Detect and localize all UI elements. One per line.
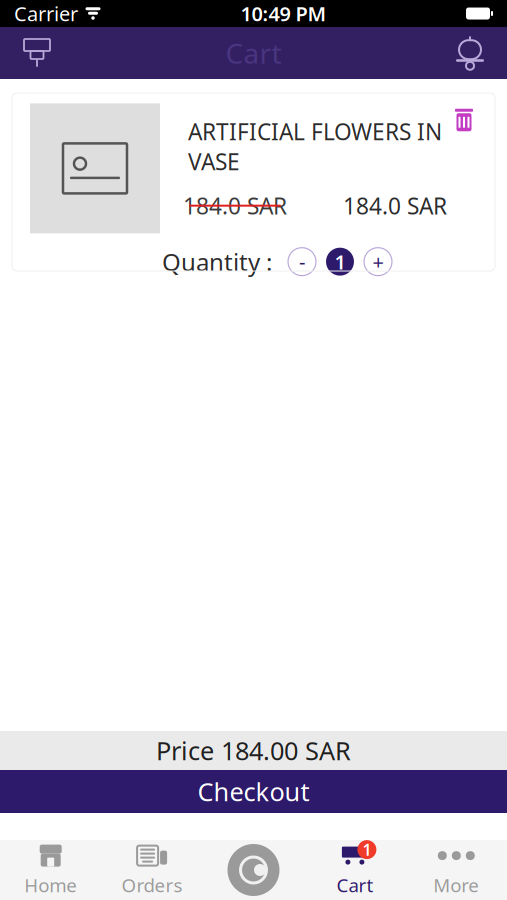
staticText: - bbox=[299, 248, 305, 275]
staticText: Carrier bbox=[14, 0, 78, 27]
staticText: Cart bbox=[336, 873, 373, 897]
button[interactable]: Remove item bbox=[445, 103, 483, 137]
button[interactable]: Scan bbox=[203, 840, 304, 900]
button[interactable]: Checkout bbox=[0, 770, 507, 813]
button[interactable]: Filter bbox=[14, 28, 60, 78]
staticText: 1 bbox=[334, 248, 345, 275]
staticText: + bbox=[372, 248, 383, 275]
staticText: Price 184.00 SAR bbox=[156, 734, 351, 767]
button[interactable]: Home bbox=[0, 840, 101, 900]
staticText: ARTIFICIAL FLOWERS IN VASE bbox=[188, 116, 442, 177]
staticText: Checkout bbox=[197, 775, 309, 808]
button[interactable]: More bbox=[406, 840, 507, 900]
staticText: Quantity : bbox=[162, 246, 272, 278]
staticText: 184.0 SAR bbox=[183, 191, 287, 221]
button[interactable]: Decrease quantity bbox=[288, 248, 316, 276]
staticText: 1 bbox=[362, 839, 371, 860]
staticText: Home bbox=[24, 873, 77, 897]
button[interactable]: Increase quantity bbox=[364, 248, 392, 276]
staticText: Cart bbox=[225, 34, 281, 72]
button[interactable]: Notifications bbox=[447, 28, 493, 78]
staticText: 10:49 PM bbox=[240, 0, 326, 27]
button[interactable]: 1 bbox=[326, 248, 354, 276]
button[interactable]: 1 bbox=[304, 840, 406, 900]
staticText: More bbox=[433, 873, 479, 897]
button[interactable]: Orders bbox=[101, 840, 203, 900]
staticText: 184.0 SAR bbox=[343, 191, 447, 221]
staticText: Orders bbox=[122, 873, 183, 897]
